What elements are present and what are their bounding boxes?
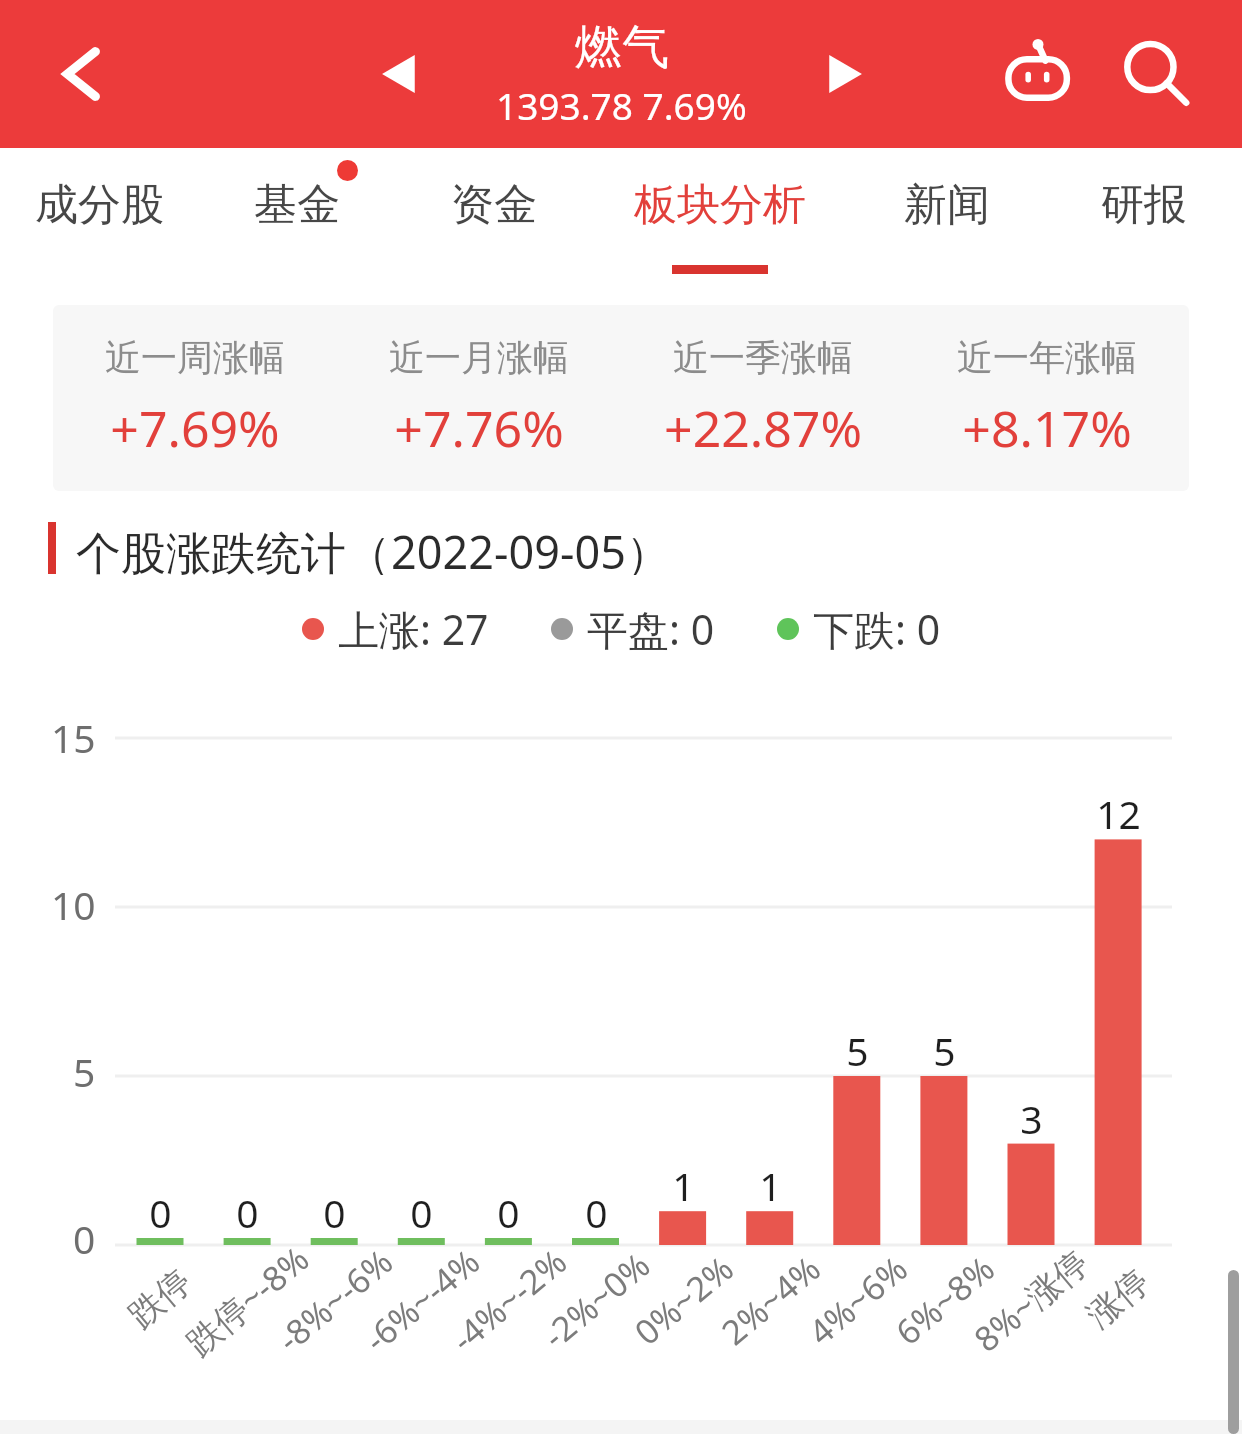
button[interactable]: 研报 <box>1045 148 1242 288</box>
staticText: 2%~4% <box>712 1245 829 1355</box>
staticText: 上涨: 27 <box>338 601 489 657</box>
staticText: 1 <box>759 1159 782 1212</box>
button[interactable]: 基金 <box>198 148 395 288</box>
staticText: 基金 <box>254 178 340 232</box>
button[interactable]: 近一年涨幅 <box>905 305 1189 491</box>
staticText: 新闻 <box>904 178 990 232</box>
staticText: 近一月涨幅 <box>389 335 569 380</box>
staticText: 跌停~-8% <box>176 1235 319 1365</box>
staticText: 0 <box>497 1186 520 1239</box>
button[interactable]: 近一周涨幅 <box>53 305 337 491</box>
staticText: 个股涨跌统计（2022-09-05） <box>76 521 671 575</box>
button[interactable]: 新闻 <box>848 148 1045 288</box>
staticText: 成分股 <box>35 178 164 232</box>
staticText: 0 <box>149 1186 172 1239</box>
staticText: 近一年涨幅 <box>957 335 1137 380</box>
staticText: 15 <box>51 711 96 764</box>
button[interactable]: Search <box>1106 24 1206 124</box>
button[interactable]: 板块分析 <box>592 148 848 288</box>
staticText: 跌停 <box>120 1260 200 1337</box>
staticText: 燃气 <box>575 18 669 77</box>
staticText: 近一季涨幅 <box>673 335 853 380</box>
button[interactable]: 近一季涨幅 <box>621 305 905 491</box>
staticText: 8%~涨停 <box>964 1239 1098 1361</box>
staticText: -2%~0% <box>533 1242 659 1358</box>
staticText: 涨停 <box>1078 1260 1158 1337</box>
button[interactable]: Back <box>34 26 130 122</box>
staticText: +7.69% <box>110 394 280 462</box>
staticText: 5 <box>73 1045 96 1098</box>
staticText: 1 <box>672 1159 695 1212</box>
button[interactable]: Assistant <box>988 24 1088 124</box>
staticText: 板块分析 <box>634 178 806 232</box>
staticText: 6%~8% <box>886 1245 1003 1355</box>
staticText: -4%~-2% <box>441 1238 576 1362</box>
staticText: 3 <box>1020 1092 1043 1145</box>
button[interactable]: 成分股 <box>0 148 198 288</box>
staticText: 0%~2% <box>625 1245 742 1355</box>
button[interactable]: Next <box>800 28 892 120</box>
staticText: 0 <box>585 1186 608 1239</box>
staticText: 0 <box>323 1186 346 1239</box>
staticText: +22.87% <box>664 394 862 462</box>
staticText: 12 <box>1096 787 1141 840</box>
staticText: 1393.78 7.69% <box>496 80 747 130</box>
staticText: -8%~-6% <box>267 1238 402 1362</box>
staticText: 平盘: 0 <box>587 601 715 657</box>
staticText: 0 <box>410 1186 433 1239</box>
staticText: 5 <box>846 1024 869 1077</box>
staticText: 研报 <box>1101 178 1187 232</box>
staticText: 近一周涨幅 <box>105 335 285 380</box>
button[interactable]: 资金 <box>395 148 592 288</box>
staticText: +7.76% <box>394 394 564 462</box>
button[interactable]: Previous <box>352 28 444 120</box>
staticText: 资金 <box>451 178 537 232</box>
button[interactable]: 近一月涨幅 <box>337 305 621 491</box>
staticText: 4%~6% <box>799 1245 916 1355</box>
staticText: 0 <box>73 1212 96 1265</box>
staticText: 5 <box>933 1024 956 1077</box>
staticText: +8.17% <box>962 394 1132 462</box>
staticText: 下跌: 0 <box>813 601 941 657</box>
staticText: -6%~-4% <box>354 1238 489 1362</box>
staticText: 0 <box>236 1186 259 1239</box>
staticText: 10 <box>51 878 96 931</box>
